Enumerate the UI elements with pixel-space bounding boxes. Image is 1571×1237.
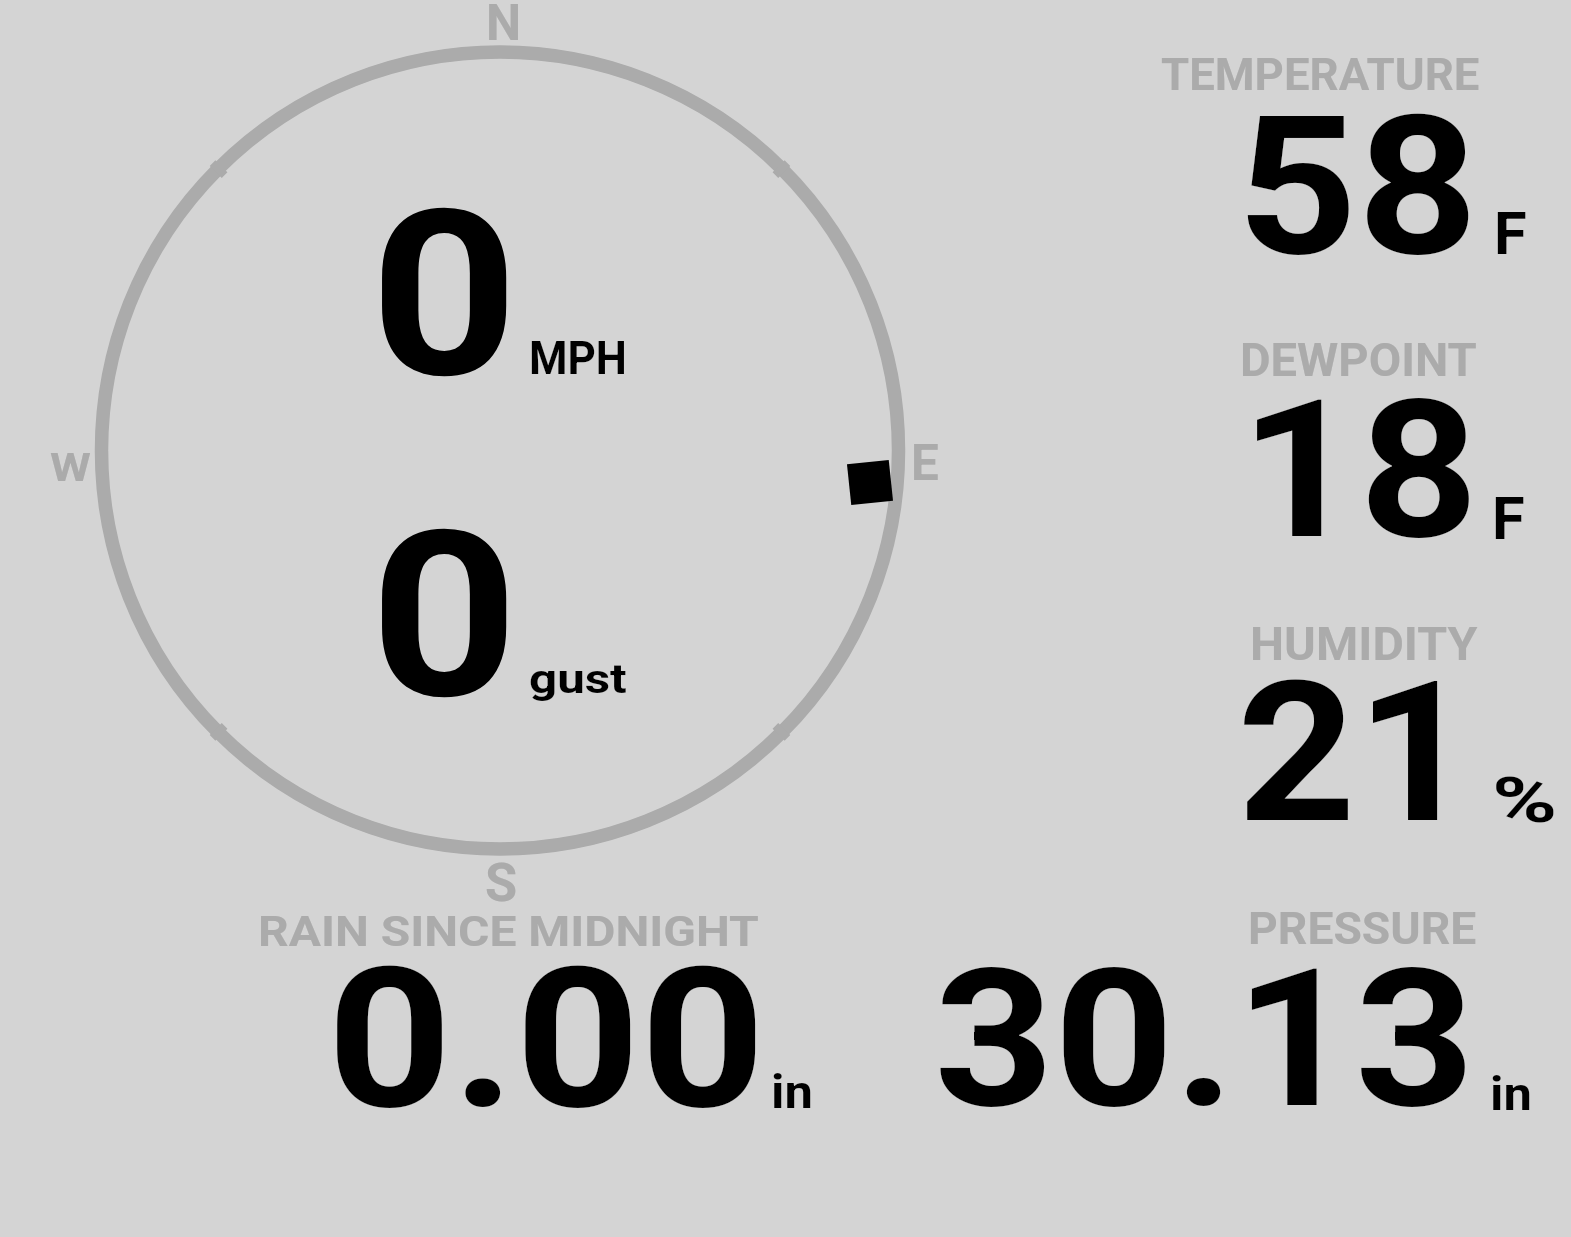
staticText: gust: [529, 655, 627, 703]
button[interactable]: Temperature 58 F: [1150, 45, 1560, 270]
staticText: E: [911, 433, 939, 492]
staticText: 0.00: [327, 926, 766, 1154]
staticText: in: [771, 1065, 814, 1119]
staticText: N: [486, 0, 522, 52]
staticText: 0: [370, 481, 519, 751]
staticText: DEWPOINT: [1240, 334, 1477, 387]
button[interactable]: Dewpoint 18 F: [1150, 330, 1560, 555]
staticText: MPH: [529, 331, 628, 385]
staticText: PRESSURE: [1248, 904, 1477, 955]
button[interactable]: Pressure 30.13 in: [930, 900, 1560, 1125]
staticText: in: [1490, 1067, 1533, 1121]
staticText: 58: [1237, 74, 1478, 300]
staticText: %: [1492, 764, 1558, 838]
button[interactable]: Wind 0 MPH, gust 0, from the east: [100, 50, 900, 850]
staticText: W: [50, 445, 92, 491]
button[interactable]: Wind direction east: [847, 460, 893, 505]
staticText: F: [1492, 484, 1525, 554]
staticText: S: [485, 852, 518, 914]
button[interactable]: Rain since midnight 0.00 in: [255, 903, 820, 1125]
staticText: RAIN SINCE MIDNIGHT: [258, 906, 760, 957]
staticText: HUMIDITY: [1250, 618, 1478, 672]
button[interactable]: Humidity 21 percent: [1150, 615, 1560, 840]
staticText: 30.13: [934, 927, 1476, 1152]
staticText: 0: [370, 160, 519, 430]
staticText: 21: [1237, 639, 1475, 868]
staticText: TEMPERATURE: [1161, 49, 1480, 101]
staticText: 18: [1240, 359, 1479, 582]
staticText: F: [1494, 199, 1527, 269]
